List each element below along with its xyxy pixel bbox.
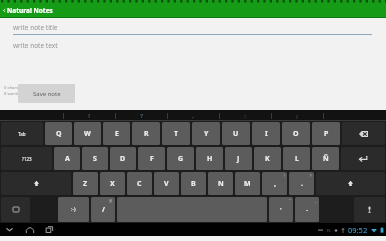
button[interactable]: W bbox=[74, 122, 101, 145]
staticText: ? bbox=[310, 173, 312, 178]
button[interactable]: : bbox=[219, 110, 271, 121]
button[interactable]: T bbox=[162, 122, 190, 145]
staticText: Z bbox=[83, 179, 88, 189]
button[interactable]: Navigate up bbox=[1, 7, 8, 14]
button[interactable]: Change keyboard bbox=[1, 197, 30, 222]
button[interactable]: D bbox=[110, 147, 136, 170]
staticText: _ bbox=[315, 198, 317, 203]
button[interactable]: J bbox=[225, 147, 252, 170]
button[interactable]: S bbox=[82, 147, 108, 170]
staticText: 0 words bbox=[4, 91, 20, 97]
button[interactable]: :-) bbox=[58, 197, 89, 222]
button[interactable]: E bbox=[103, 122, 130, 145]
staticText: write note text bbox=[13, 41, 58, 50]
button[interactable]: Y bbox=[192, 122, 220, 145]
staticText: , bbox=[192, 112, 194, 120]
staticText: A bbox=[65, 154, 70, 164]
staticText: . bbox=[301, 179, 303, 189]
button[interactable]: U bbox=[222, 122, 250, 145]
button[interactable]: write note text bbox=[13, 41, 372, 81]
staticText: T bbox=[174, 129, 179, 139]
button[interactable]: M bbox=[235, 172, 260, 195]
staticText: 0 chars bbox=[4, 85, 19, 91]
staticText: @ bbox=[109, 198, 113, 203]
staticText: R bbox=[144, 129, 149, 139]
button[interactable]: B bbox=[181, 172, 206, 195]
button[interactable]: F bbox=[138, 147, 165, 170]
button[interactable]: R bbox=[132, 122, 160, 145]
button[interactable]: ? bbox=[115, 110, 167, 121]
staticText: Save note bbox=[33, 90, 61, 98]
button[interactable]: ! bbox=[63, 110, 115, 121]
staticText: G bbox=[178, 154, 184, 164]
staticText: F bbox=[150, 154, 154, 164]
button[interactable]: Backspace bbox=[342, 122, 385, 145]
staticText: U bbox=[233, 129, 239, 139]
button[interactable]: N bbox=[208, 172, 233, 195]
button[interactable]: Back bbox=[4, 224, 15, 235]
button[interactable]: A bbox=[54, 147, 80, 170]
button[interactable]: Recent apps bbox=[44, 224, 55, 235]
button[interactable]: I bbox=[252, 122, 280, 145]
button[interactable]: Z bbox=[73, 172, 98, 195]
button[interactable]: P bbox=[312, 122, 340, 145]
button[interactable]: Tab bbox=[1, 122, 43, 145]
staticText: / bbox=[102, 205, 105, 215]
staticText: Y bbox=[204, 129, 209, 139]
button[interactable]: . bbox=[289, 172, 314, 195]
button[interactable]: L bbox=[283, 147, 310, 170]
button[interactable]: Ñ bbox=[312, 147, 339, 170]
button[interactable]: Home bbox=[24, 224, 35, 235]
staticText: , bbox=[274, 179, 276, 189]
button[interactable]: ; bbox=[271, 110, 323, 121]
button[interactable]: V bbox=[154, 172, 179, 195]
button[interactable]: X bbox=[100, 172, 125, 195]
button[interactable]: / bbox=[91, 197, 115, 222]
button[interactable]: O bbox=[282, 122, 310, 145]
button[interactable]: ?123 bbox=[1, 147, 52, 170]
button[interactable]: Enter bbox=[341, 147, 385, 170]
button[interactable]: K bbox=[254, 147, 281, 170]
button[interactable]: ' bbox=[269, 197, 293, 222]
staticText: W bbox=[84, 129, 91, 139]
button[interactable]: Shift bbox=[1, 172, 71, 195]
button[interactable]: , bbox=[262, 172, 287, 195]
staticText: N bbox=[218, 179, 224, 189]
button[interactable]: - bbox=[295, 197, 319, 222]
staticText: " bbox=[289, 198, 291, 203]
button[interactable]: C bbox=[127, 172, 152, 195]
staticText: Natural Notes bbox=[7, 6, 53, 15]
staticText: - bbox=[306, 206, 308, 214]
button[interactable]: , bbox=[167, 110, 219, 121]
staticText: M bbox=[244, 179, 251, 189]
staticText: ' bbox=[280, 206, 282, 214]
staticText: ! bbox=[88, 112, 90, 120]
button[interactable] bbox=[323, 110, 386, 121]
staticText: :-) bbox=[71, 206, 76, 213]
button[interactable]: Voice input bbox=[354, 197, 385, 222]
staticText: E bbox=[115, 129, 119, 139]
staticText: X bbox=[110, 179, 115, 189]
button[interactable]: G bbox=[167, 147, 194, 170]
button[interactable]: H bbox=[196, 147, 223, 170]
staticText: write note title bbox=[13, 23, 58, 32]
staticText: O bbox=[293, 129, 299, 139]
staticText: B bbox=[191, 179, 196, 189]
button[interactable]: write note title bbox=[13, 23, 372, 35]
staticText: Q bbox=[56, 129, 62, 139]
button[interactable]: Q bbox=[45, 122, 72, 145]
staticText: S bbox=[93, 154, 97, 164]
staticText: I bbox=[265, 129, 268, 139]
button[interactable]: Shift bbox=[316, 172, 385, 195]
staticText: V bbox=[164, 179, 169, 189]
button[interactable]: Save note bbox=[18, 84, 75, 103]
staticText: J bbox=[237, 154, 240, 164]
button[interactable] bbox=[0, 110, 63, 121]
staticText: D bbox=[120, 154, 126, 164]
staticText: Ñ bbox=[323, 154, 329, 164]
staticText: 15 bbox=[326, 228, 331, 233]
staticText: H bbox=[207, 154, 213, 164]
staticText: ; bbox=[296, 112, 298, 120]
staticText: P bbox=[324, 129, 329, 139]
